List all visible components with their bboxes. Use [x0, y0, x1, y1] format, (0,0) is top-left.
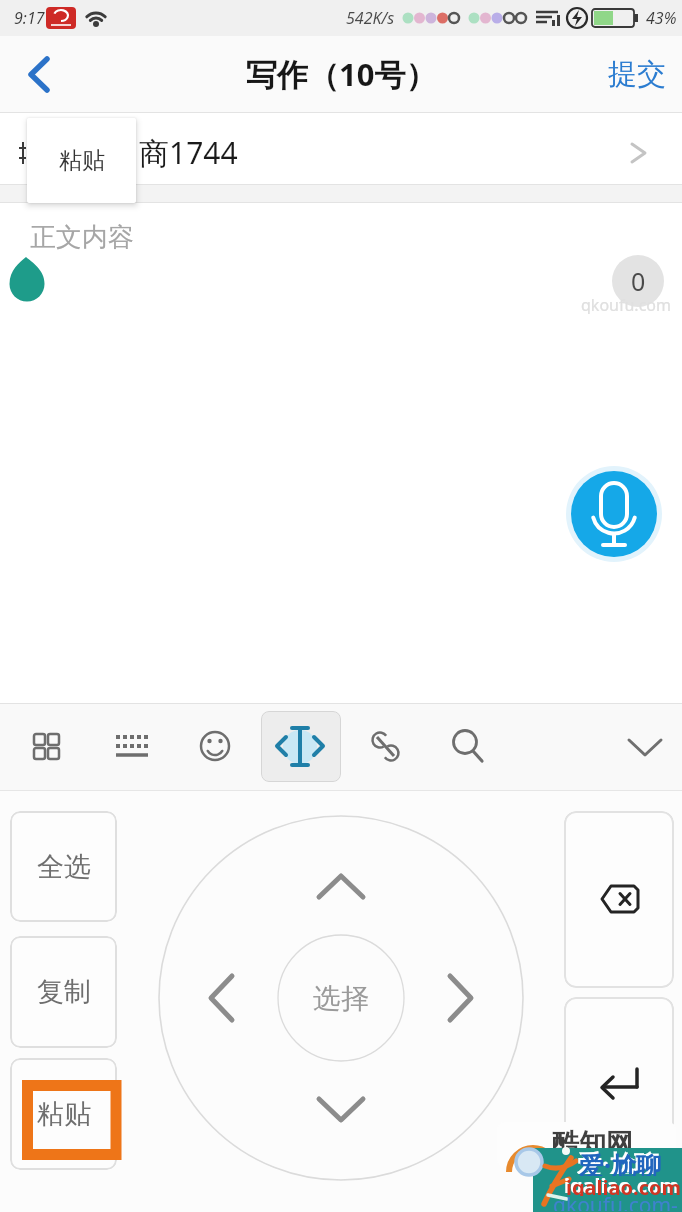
button[interactable]: [261, 711, 341, 782]
staticText: qkoufu.com: [581, 294, 671, 314]
staticText: 写作（10号）: [246, 53, 437, 95]
staticText: igaliao.com: [564, 1172, 679, 1194]
button[interactable]: [10, 936, 117, 1048]
staticText: 爱·尬聊: [577, 1146, 660, 1174]
button[interactable]: [102, 714, 158, 776]
staticText: 酷知网: [552, 1127, 633, 1161]
button[interactable]: [278, 935, 404, 1061]
button[interactable]: [439, 714, 495, 776]
staticText: igaliao.com: [566, 1174, 681, 1196]
button[interactable]: [14, 48, 70, 100]
button[interactable]: [430, 966, 492, 1032]
button[interactable]: [18, 714, 74, 776]
button[interactable]: 提交: [597, 48, 677, 100]
staticText: 542K/s: [346, 7, 395, 29]
button[interactable]: [358, 714, 414, 776]
staticText: qkoufu.com-: [553, 1191, 678, 1211]
button[interactable]: [305, 1080, 377, 1142]
button[interactable]: [564, 811, 674, 988]
staticText: 选择: [313, 981, 369, 1016]
button[interactable]: [617, 714, 673, 776]
staticText: 商1744: [139, 132, 238, 173]
staticText: 复制: [37, 975, 91, 1009]
staticText: 全选: [37, 850, 91, 884]
staticText: 43%: [646, 7, 677, 29]
staticText: 粘贴: [59, 146, 105, 175]
button[interactable]: [10, 1058, 117, 1170]
staticText: 粘贴: [37, 1097, 91, 1131]
button[interactable]: [187, 714, 243, 776]
button[interactable]: [571, 471, 657, 557]
staticText: 9:17: [14, 7, 45, 29]
button[interactable]: [0, 113, 682, 184]
button[interactable]: [190, 966, 252, 1032]
button[interactable]: [564, 997, 674, 1175]
staticText: 0: [631, 264, 646, 298]
button[interactable]: [305, 856, 377, 918]
button[interactable]: [10, 811, 117, 922]
staticText: 爱·尬聊: [579, 1148, 662, 1176]
staticText: 正文内容: [30, 221, 134, 254]
button[interactable]: 粘贴: [27, 118, 136, 203]
staticText: 提交: [608, 56, 666, 93]
